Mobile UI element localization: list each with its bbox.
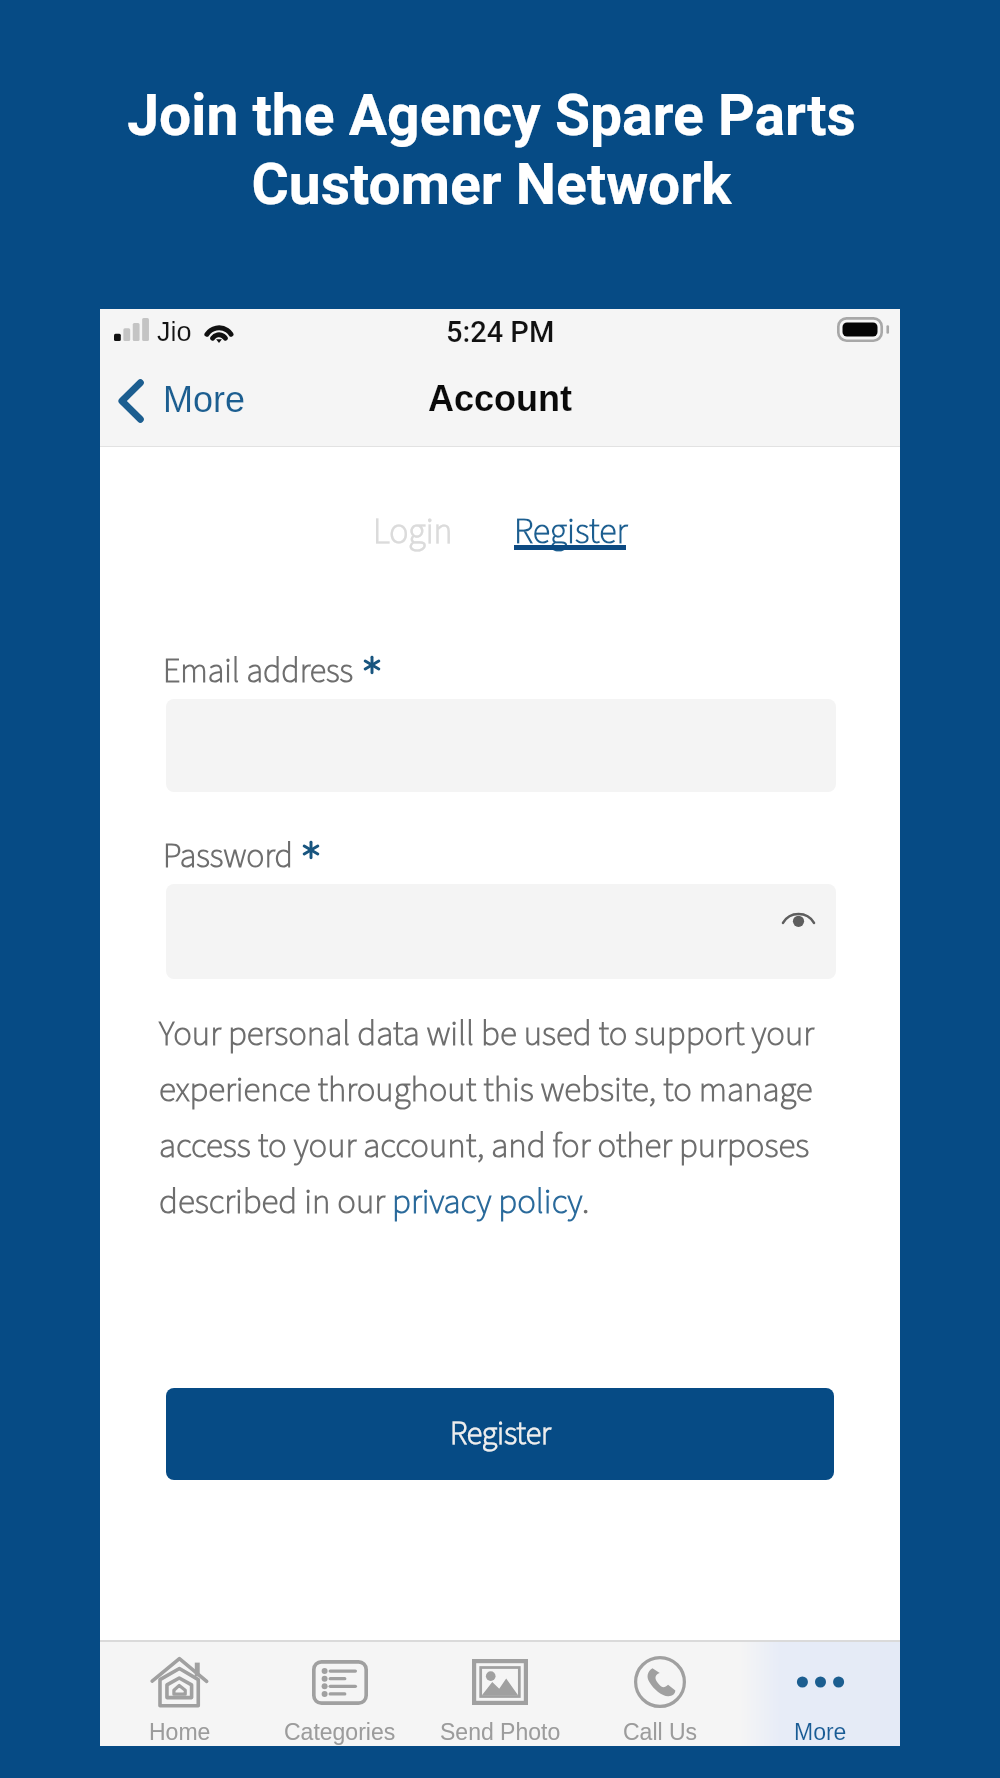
button[interactable]: Register — [500, 492, 642, 550]
button[interactable]: Categories — [260, 1640, 420, 1746]
staticText: Login — [373, 506, 453, 557]
staticText: Home — [149, 1719, 211, 1745]
staticText: Jio — [157, 317, 192, 347]
staticText: Account — [428, 378, 572, 418]
button[interactable]: More — [740, 1640, 900, 1746]
staticText: Send Photo — [440, 1719, 561, 1745]
button[interactable]: Send Photo — [420, 1640, 580, 1746]
button[interactable]: Register — [166, 1388, 834, 1480]
staticText: Register — [450, 1411, 551, 1457]
button[interactable]: Home — [100, 1640, 260, 1746]
staticText: Categories — [284, 1719, 396, 1745]
staticText: More — [163, 379, 246, 419]
staticText: Email address — [163, 647, 354, 695]
staticText: Join the Agency Spare Parts Customer Net… — [127, 82, 856, 218]
button[interactable]: Login — [353, 492, 473, 571]
button[interactable]: Show password — [761, 884, 836, 951]
staticText: Call Us — [623, 1719, 698, 1745]
button[interactable]: Show password — [166, 884, 836, 979]
staticText: Password — [163, 832, 293, 880]
button[interactable]: Call Us — [580, 1640, 740, 1746]
staticText: 5:24 PM — [446, 315, 555, 349]
staticText: Your personal data will be used to suppo… — [159, 1009, 849, 1227]
staticText: More — [794, 1719, 847, 1745]
button[interactable]: More — [100, 360, 262, 440]
staticText: Register — [514, 506, 628, 557]
